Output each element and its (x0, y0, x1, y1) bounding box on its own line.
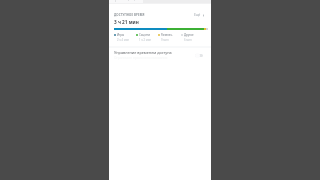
staticText: 3 ч 21 мин (114, 19, 139, 25)
staticText: 9 мин (161, 38, 169, 42)
staticText: 6 мин (184, 38, 192, 42)
staticText: ДОСТУПНОЕ ВРЕМЯ (114, 13, 145, 17)
button[interactable]: Управление временем доступа (109, 48, 211, 62)
staticText: Другое (184, 33, 194, 37)
other: Управление временем доступа (195, 53, 203, 58)
staticText: Развлеч. (161, 33, 173, 37)
button[interactable]: Ещё (194, 13, 205, 17)
staticText: Игры (117, 33, 125, 37)
staticText: Управление временем доступа (114, 50, 172, 55)
staticText: 2 ч 4 мин (117, 38, 130, 42)
staticText: Соцсети (139, 33, 151, 37)
staticText: Ещё (194, 13, 201, 17)
staticText: 1 ч 2 мин (139, 38, 152, 42)
